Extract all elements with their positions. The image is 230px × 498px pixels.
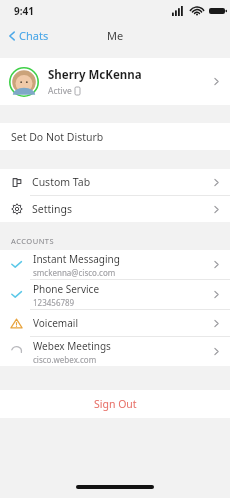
staticText: Active [48, 85, 72, 97]
staticText: 123456789 [33, 297, 75, 308]
other: Custom Tab [11, 176, 23, 188]
button[interactable]: Settings [0, 196, 230, 222]
button[interactable]: Chats [7, 28, 49, 43]
staticText: Sherry McKenna [48, 67, 142, 83]
staticText: Webex Meetings [33, 339, 111, 353]
staticText: Set Do Not Disturb [11, 130, 104, 144]
staticText: Sign Out [94, 397, 137, 411]
button[interactable]: Instant Messaging [0, 250, 230, 279]
staticText: cisco.webex.com [33, 354, 97, 365]
staticText: Custom Tab [32, 175, 91, 189]
staticText: Settings [32, 202, 72, 216]
button[interactable]: Phone Service [0, 280, 230, 309]
button[interactable]: Sign Out [0, 390, 230, 418]
staticText: Phone Service [33, 282, 100, 296]
button[interactable]: Custom Tab [0, 169, 230, 195]
staticText: smckenna@cisco.com [33, 267, 116, 278]
other: Settings [11, 203, 23, 215]
staticText: Me [107, 28, 124, 43]
button[interactable]: Set Do Not Disturb [0, 123, 230, 150]
staticText: 9:41 [14, 4, 34, 18]
staticText: Chats [19, 28, 49, 43]
staticText: ACCOUNTS [11, 236, 55, 246]
staticText: Instant Messaging [33, 252, 120, 266]
button[interactable]: Webex Meetings [0, 337, 230, 366]
staticText: Voicemail [33, 316, 78, 330]
button[interactable]: Voicemail [0, 310, 230, 336]
button[interactable]: Sherry McKenna [0, 58, 230, 105]
